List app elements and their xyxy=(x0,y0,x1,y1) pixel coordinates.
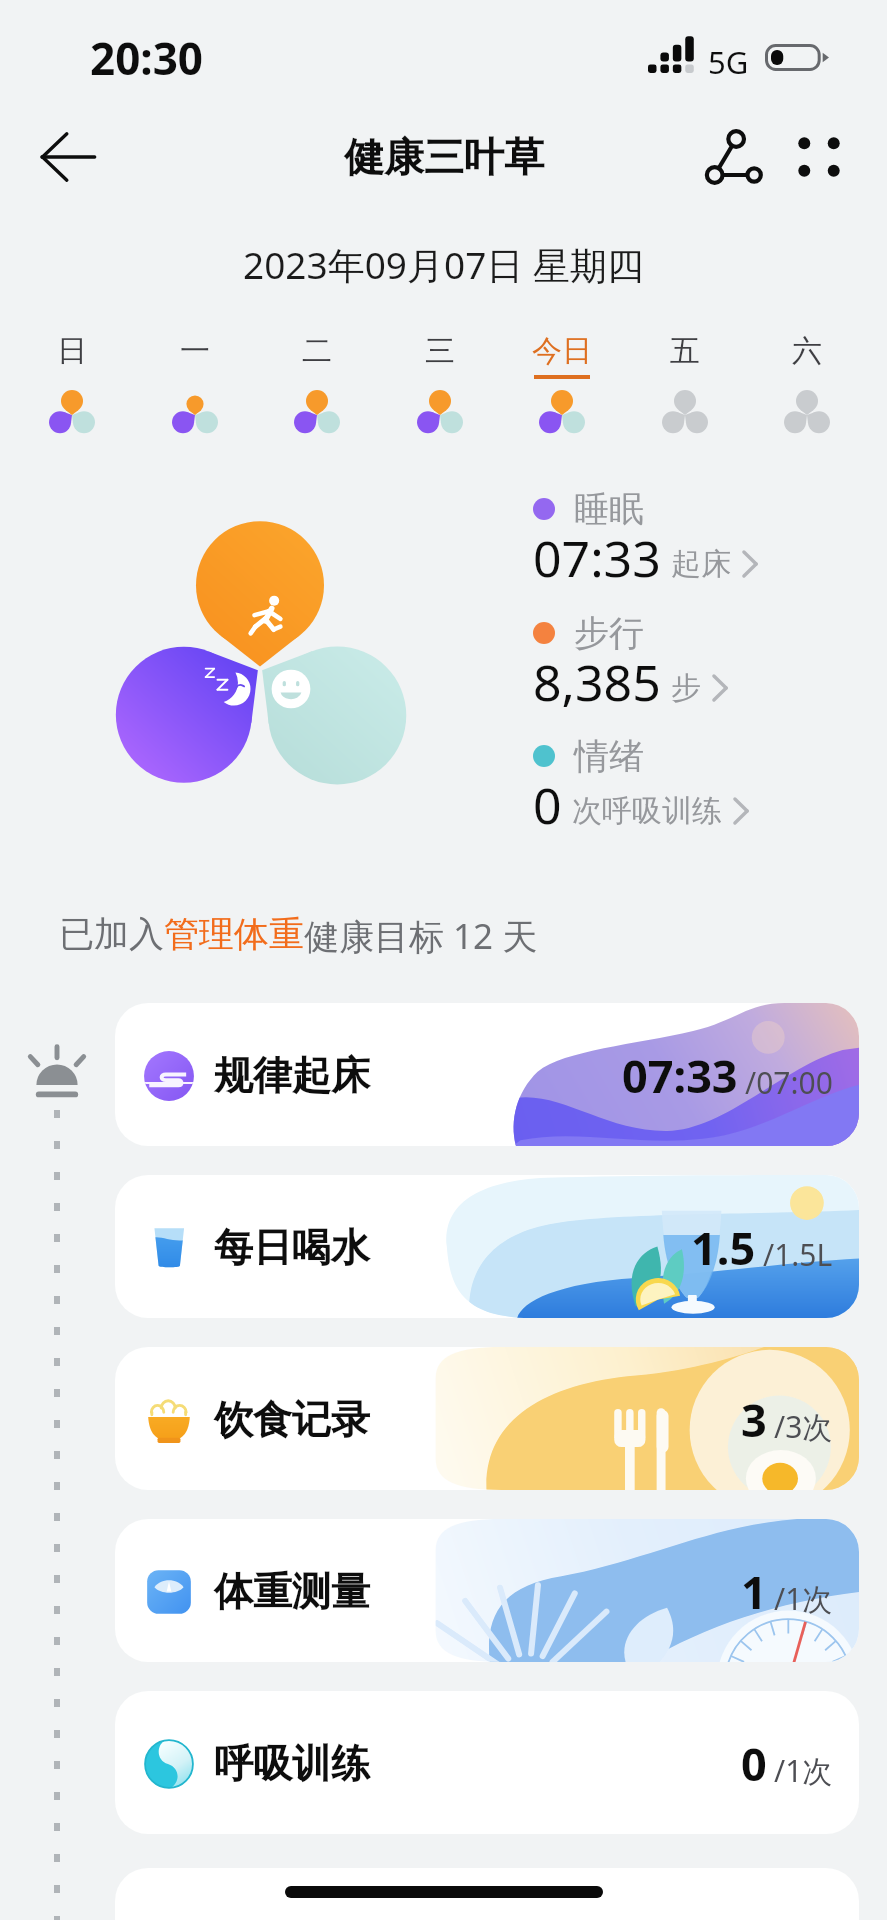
button[interactable]: 每日喝水 xyxy=(115,1175,859,1318)
button[interactable]: 六 xyxy=(746,328,868,448)
staticText: 5G xyxy=(708,41,749,83)
button[interactable]: 今日 xyxy=(501,328,623,448)
staticText: 五 xyxy=(670,332,700,370)
button[interactable]: 一 xyxy=(134,328,256,448)
button[interactable]: 体重测量 xyxy=(115,1519,859,1662)
button[interactable]: More options xyxy=(778,116,860,198)
staticText: 呼吸训练 xyxy=(214,1739,370,1788)
button[interactable]: 日 xyxy=(11,328,133,448)
button[interactable]: Back xyxy=(24,113,112,201)
staticText: 起床 xyxy=(671,545,731,583)
staticText: /1.5L xyxy=(763,1234,833,1275)
staticText: 07:33 xyxy=(622,1045,738,1106)
button[interactable]: 饮食记录 xyxy=(115,1347,859,1490)
staticText: 管理体重 xyxy=(164,912,304,956)
staticText: 六 xyxy=(792,332,822,370)
staticText: 0 xyxy=(741,1733,767,1794)
staticText: /1次 xyxy=(774,1578,833,1619)
staticText: /07:00 xyxy=(745,1062,833,1103)
staticText: 日 xyxy=(57,332,87,370)
staticText: 2023年09月07日 星期四 xyxy=(243,239,644,290)
staticText: 二 xyxy=(302,332,332,370)
staticText: 步 xyxy=(671,669,701,707)
staticText: /1次 xyxy=(774,1750,833,1791)
staticText: 三 xyxy=(425,332,455,370)
staticText: 睡眠 xyxy=(574,487,644,531)
button[interactable]: 二 xyxy=(256,328,378,448)
staticText: 情绪 xyxy=(574,734,644,778)
button[interactable]: 睡眠 xyxy=(533,487,765,599)
staticText: 健康三叶草 xyxy=(344,132,544,182)
staticText: /3次 xyxy=(774,1406,833,1447)
staticText: 8,385 xyxy=(533,648,661,716)
staticText: 07:33 xyxy=(533,524,661,592)
button[interactable]: 三 xyxy=(379,328,501,448)
staticText: 体重测量 xyxy=(214,1567,370,1616)
staticText: 次呼吸训练 xyxy=(572,792,722,830)
button[interactable] xyxy=(115,1868,859,1920)
staticText: 饮食记录 xyxy=(214,1395,370,1444)
staticText: 1.5 xyxy=(691,1217,756,1278)
staticText: 0 xyxy=(533,771,562,839)
staticText: 已加入 xyxy=(59,912,164,956)
button[interactable]: 规律起床 xyxy=(115,1003,859,1146)
staticText: 一 xyxy=(180,332,210,370)
button[interactable]: 情绪 xyxy=(533,734,756,846)
staticText: 健康目标 12 天 xyxy=(304,912,538,960)
staticText: 步行 xyxy=(574,611,644,655)
staticText: 20:30 xyxy=(90,28,204,88)
button[interactable]: 呼吸训练 xyxy=(115,1691,859,1834)
staticText: 1 xyxy=(741,1561,767,1622)
staticText: 今日 xyxy=(532,332,592,370)
staticText: 规律起床 xyxy=(214,1051,370,1100)
staticText: 3 xyxy=(741,1389,767,1450)
button[interactable]: 步行 xyxy=(533,611,735,723)
staticText: 每日喝水 xyxy=(214,1223,370,1272)
button[interactable]: Share xyxy=(694,116,776,198)
button[interactable]: 五 xyxy=(624,328,746,448)
